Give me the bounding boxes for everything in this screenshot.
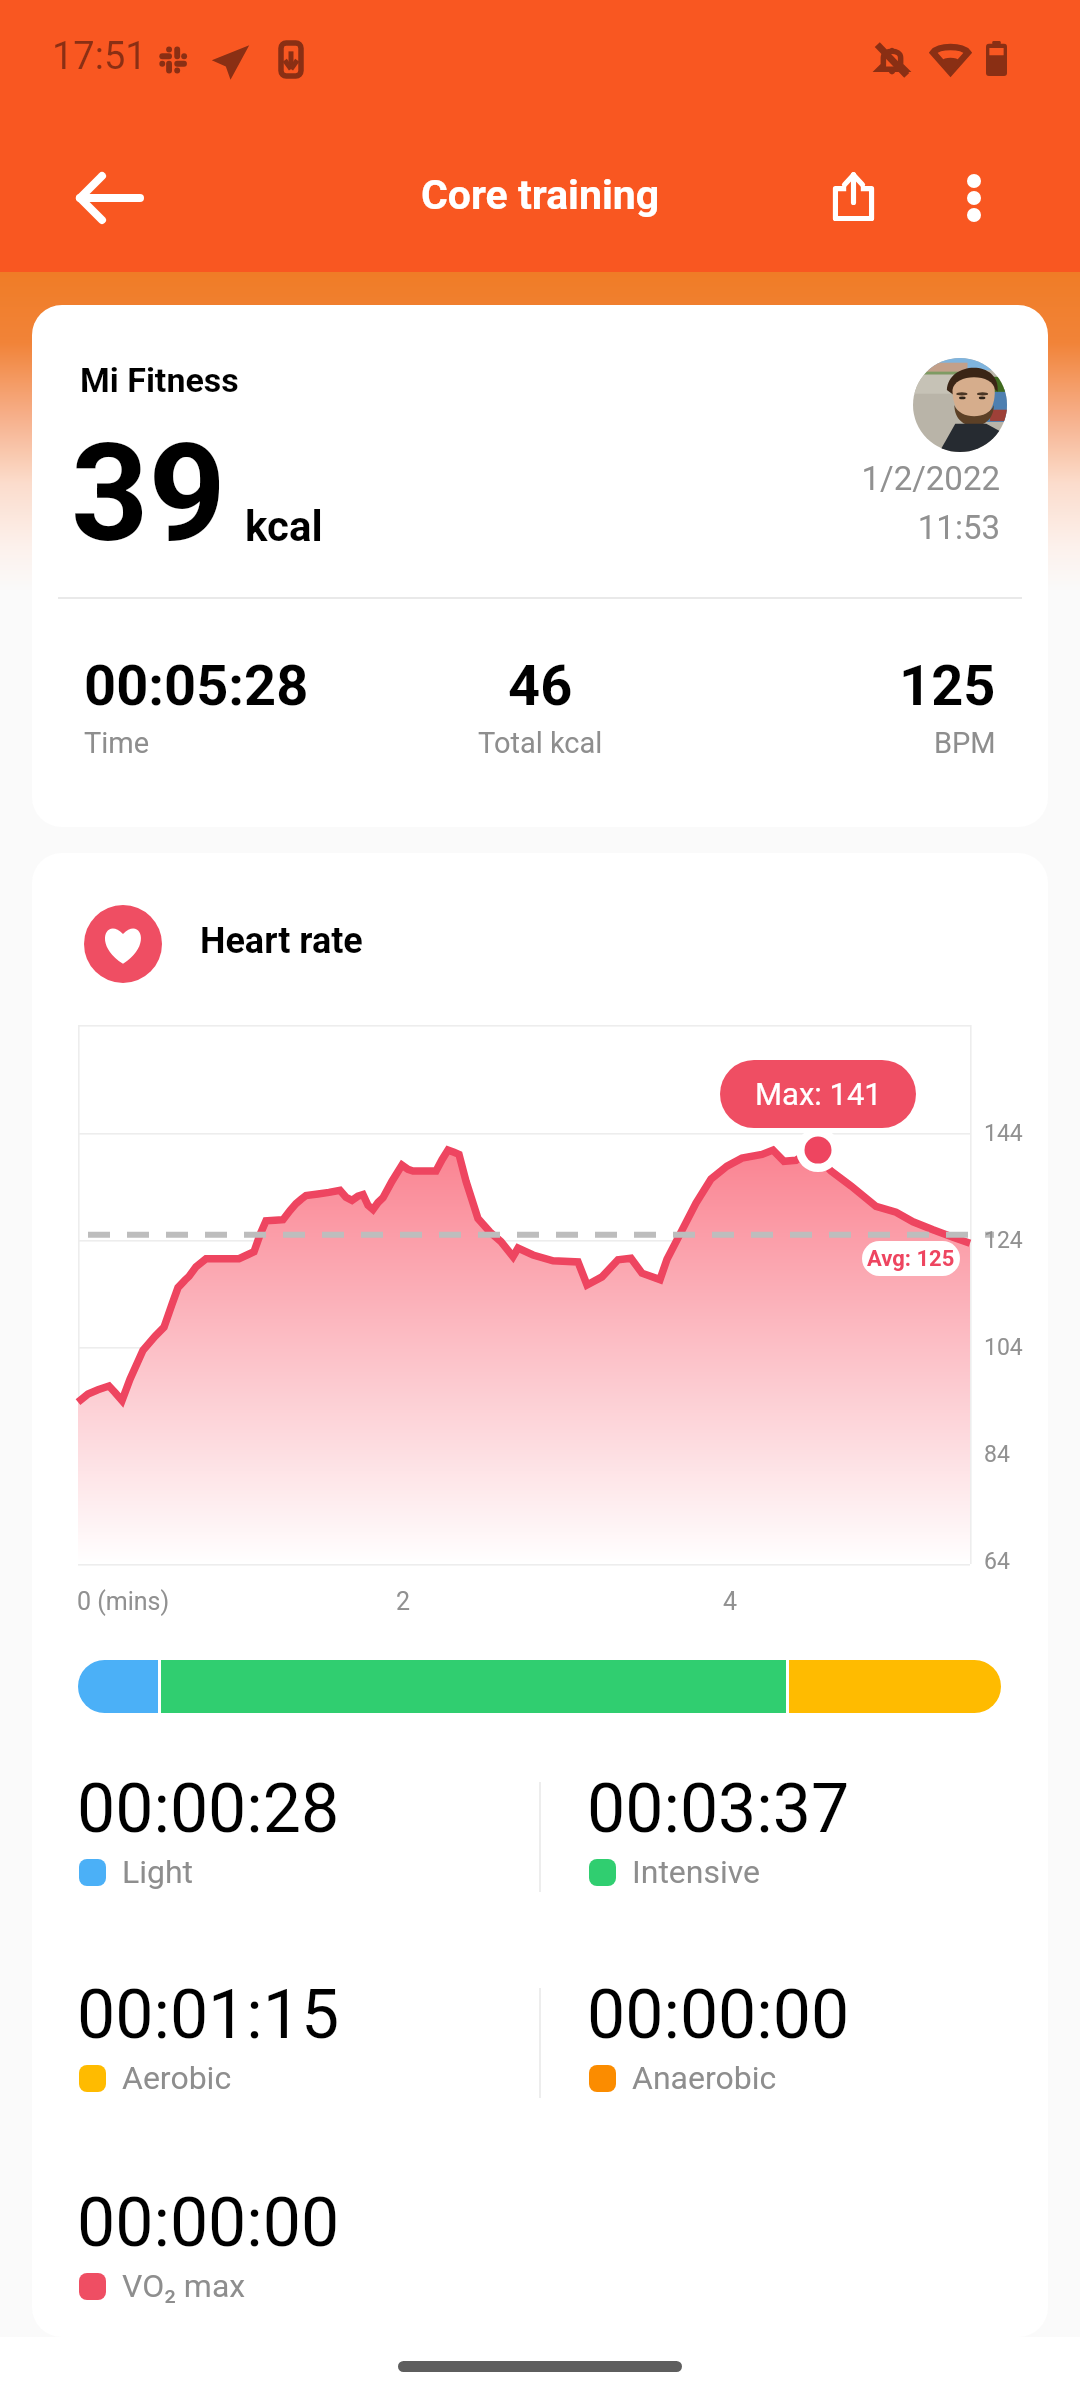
staticText: 00:01:15	[77, 1975, 340, 2055]
button[interactable]: Share	[809, 152, 897, 240]
staticText: 00:03:37	[587, 1769, 850, 1849]
button[interactable]: 00:00:00	[77, 2183, 340, 2305]
staticText: Aerobic	[122, 2059, 232, 2097]
button[interactable]: Max: 141	[720, 1060, 916, 1128]
staticText: Intensive	[632, 1853, 761, 1891]
staticText: 4	[723, 1587, 738, 1616]
staticText: 00:00:00	[77, 2183, 340, 2263]
staticText: kcal	[245, 502, 323, 551]
staticText: Total kcal	[478, 726, 603, 760]
button[interactable]: 00:03:37	[587, 1769, 850, 1891]
staticText: VO₂ max	[122, 2267, 246, 2305]
button[interactable]: Back	[66, 154, 154, 242]
staticText: 39	[71, 415, 226, 573]
staticText: 00:00:00	[587, 1975, 850, 2055]
staticText: 0 (mins)	[77, 1587, 170, 1616]
staticText: Heart rate	[200, 920, 363, 962]
staticText: Mi Fitness	[80, 360, 239, 400]
staticText: 00:00:28	[77, 1769, 340, 1849]
button[interactable]: 00:01:15	[77, 1975, 340, 2097]
button[interactable]: Mi Fitness	[32, 305, 1048, 827]
button[interactable]: More options	[930, 154, 1018, 242]
staticText: Light	[122, 1853, 194, 1891]
staticText: Time	[84, 726, 150, 760]
staticText: 1/2/2022	[861, 459, 1000, 498]
staticText: 124	[984, 1227, 1023, 1254]
staticText: Core training	[421, 171, 660, 219]
staticText: 17:51	[52, 34, 147, 79]
staticText: 00:05:28	[84, 653, 309, 719]
staticText: 46	[508, 653, 573, 719]
staticText: 104	[984, 1334, 1023, 1361]
staticText: BPM	[934, 726, 996, 760]
staticText: 125	[899, 653, 996, 719]
staticText: 84	[984, 1441, 1010, 1468]
staticText: 11:53	[917, 508, 1000, 547]
staticText: Max: 141	[755, 1076, 882, 1112]
staticText: 2	[396, 1587, 411, 1616]
staticText: 64	[984, 1548, 1010, 1575]
staticText: 144	[984, 1120, 1023, 1147]
staticText: Avg: 125	[867, 1246, 955, 1272]
button[interactable]: 00:00:00	[587, 1975, 850, 2097]
button[interactable]: 00:00:28	[77, 1769, 340, 1891]
staticText: Anaerobic	[632, 2059, 777, 2097]
